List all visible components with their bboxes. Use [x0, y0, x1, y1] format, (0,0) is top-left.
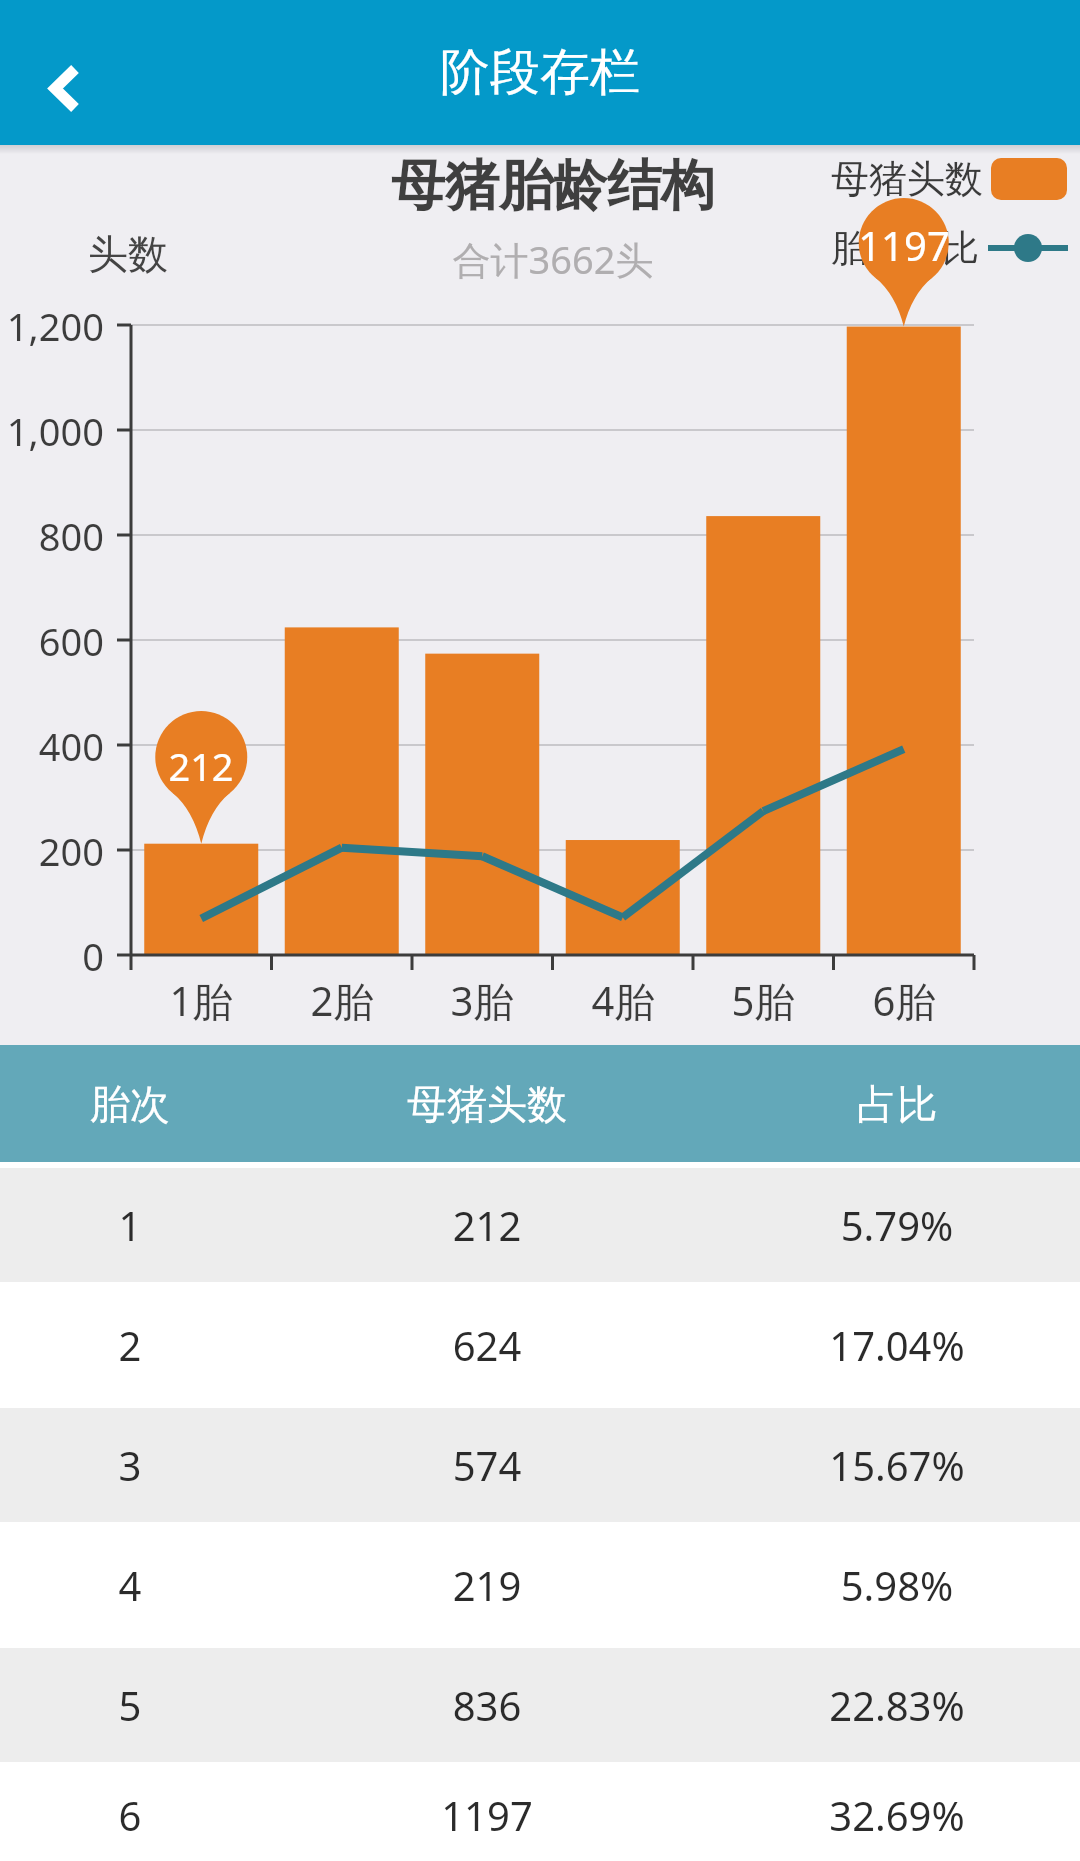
staticText: 219	[260, 1558, 714, 1612]
staticText: 4	[0, 1558, 260, 1612]
staticText: 母猪胎龄结构	[13, 152, 1080, 220]
staticText: 400	[0, 720, 104, 772]
staticText: 600	[0, 615, 104, 667]
button[interactable]: 1	[0, 1168, 1080, 1282]
staticText: 3胎	[412, 973, 552, 1028]
staticText: 624	[260, 1318, 714, 1372]
staticText: 0	[0, 930, 104, 982]
staticText: 1,200	[0, 300, 104, 352]
staticText: 1胎	[131, 973, 271, 1028]
staticText: 574	[260, 1438, 714, 1492]
staticText: 17.04%	[714, 1318, 1080, 1372]
staticText: 6	[0, 1788, 260, 1842]
staticText: 母猪头数	[260, 1079, 714, 1129]
staticText: 212	[260, 1198, 714, 1252]
staticText: 2胎	[272, 973, 412, 1028]
staticText: 5.79%	[714, 1198, 1080, 1252]
staticText: 2	[0, 1318, 260, 1372]
staticText: 22.83%	[714, 1678, 1080, 1732]
staticText: 胎次	[0, 1079, 260, 1129]
staticText: 胎龄占比	[831, 225, 979, 272]
staticText: 5	[0, 1678, 260, 1732]
button[interactable]: 2	[0, 1288, 1080, 1402]
staticText: 1197	[260, 1788, 714, 1842]
button[interactable]: 4	[0, 1528, 1080, 1642]
button[interactable]	[0, 0, 130, 145]
staticText: 15.67%	[714, 1438, 1080, 1492]
staticText: 头数	[88, 229, 168, 279]
staticText: 1,000	[0, 405, 104, 457]
button[interactable]: 3	[0, 1408, 1080, 1522]
staticText: 200	[0, 825, 104, 877]
button[interactable]: 6	[0, 1768, 1080, 1861]
staticText: 5胎	[693, 973, 833, 1028]
staticText: 1197	[834, 218, 974, 272]
staticText: 836	[260, 1678, 714, 1732]
staticText: 6胎	[834, 973, 974, 1028]
staticText: 800	[0, 510, 104, 562]
staticText: 1	[0, 1198, 260, 1252]
staticText: 合计3662头	[13, 233, 1080, 285]
staticText: 3	[0, 1438, 260, 1492]
staticText: 5.98%	[714, 1558, 1080, 1612]
staticText: 32.69%	[714, 1788, 1080, 1842]
staticText: 占比	[714, 1079, 1080, 1129]
staticText: 阶段存栏	[440, 41, 640, 104]
staticText: 4胎	[553, 973, 693, 1028]
staticText: 212	[131, 740, 271, 792]
button[interactable]: 5	[0, 1648, 1080, 1762]
staticText: 母猪头数	[831, 155, 983, 203]
